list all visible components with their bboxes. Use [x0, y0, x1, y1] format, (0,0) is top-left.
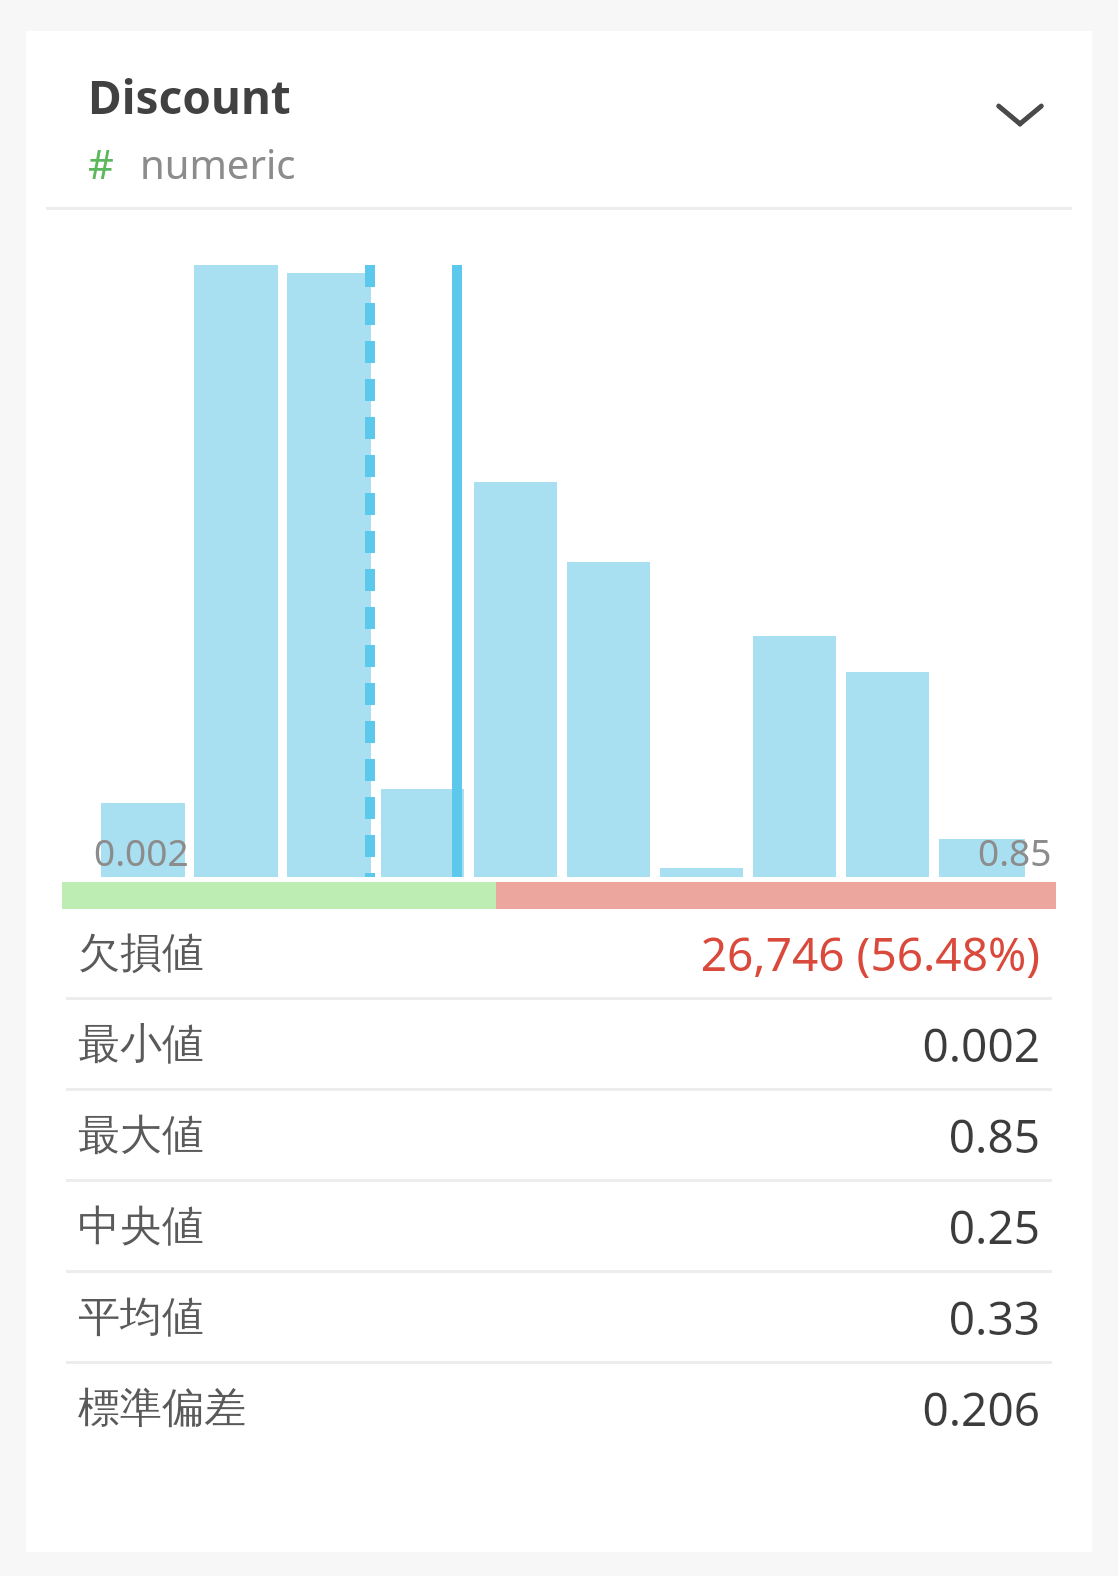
staticText: 0.33 — [948, 1286, 1040, 1349]
staticText: 0.206 — [922, 1377, 1040, 1440]
staticText: 26,746 (56.48%) — [700, 922, 1040, 985]
button[interactable]: Discount — [26, 31, 1092, 207]
staticText: 0.25 — [948, 1195, 1040, 1258]
staticText: 中央値 — [78, 1200, 204, 1253]
staticText: 0.85 — [978, 826, 1052, 876]
staticText: Discount — [88, 65, 291, 128]
staticText: numeric — [140, 136, 296, 190]
button[interactable]: 平均値 — [26, 1273, 1092, 1361]
staticText: 平均値 — [78, 1291, 204, 1344]
staticText: # — [88, 136, 114, 190]
staticText: 0.85 — [948, 1104, 1040, 1167]
staticText: 欠損値 — [78, 927, 204, 980]
staticText: 最大値 — [78, 1109, 204, 1162]
staticText: 標準偏差 — [78, 1382, 246, 1435]
staticText: 0.002 — [94, 826, 189, 876]
button[interactable]: 最大値 — [26, 1091, 1092, 1179]
button[interactable]: 欠損値 — [26, 909, 1092, 997]
button[interactable]: 標準偏差 — [26, 1364, 1092, 1452]
button[interactable]: 中央値 — [26, 1182, 1092, 1270]
staticText: 最小値 — [78, 1018, 204, 1071]
button[interactable]: 最小値 — [26, 1000, 1092, 1088]
staticText: 0.002 — [922, 1013, 1040, 1076]
button[interactable]: Collapse — [980, 75, 1060, 155]
